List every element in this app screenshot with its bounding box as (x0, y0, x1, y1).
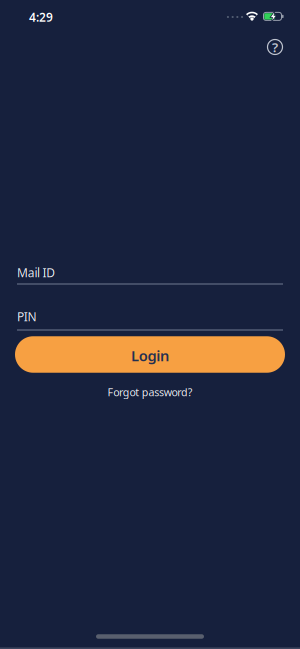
button[interactable]: Help (263, 35, 287, 59)
staticText: PIN (17, 308, 36, 324)
staticText: 4:29 (29, 9, 53, 25)
staticText: Forgot password? (107, 385, 193, 399)
staticText: ? (272, 38, 278, 56)
staticText: Mail ID (17, 264, 55, 280)
staticText: Login (131, 346, 169, 365)
button[interactable]: Login (15, 336, 285, 373)
button[interactable]: Forgot password? (107, 385, 193, 399)
